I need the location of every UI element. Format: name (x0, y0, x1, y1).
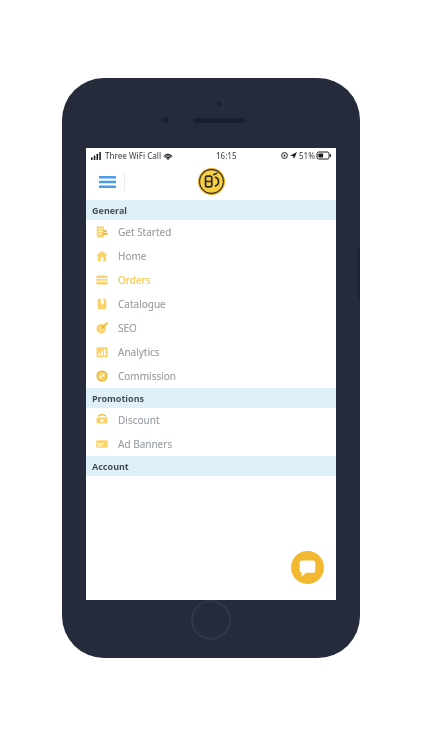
button[interactable]: App logo (198, 168, 225, 195)
staticText: 51% (299, 150, 315, 161)
staticText: Three WiFi Call (105, 150, 162, 161)
staticText: Catalogue (118, 297, 166, 311)
staticText: Ad Banners (118, 437, 173, 451)
staticText: Get Started (118, 225, 172, 239)
staticText: General (92, 204, 128, 216)
button[interactable]: Discount (86, 408, 336, 432)
staticText: Analytics (118, 345, 160, 359)
button[interactable]: Chat support (291, 551, 324, 584)
staticText: Promotions (92, 392, 145, 404)
button[interactable]: Orders (86, 268, 336, 292)
staticText: Account (92, 460, 129, 472)
staticText: SEO (118, 321, 137, 335)
button[interactable]: Open navigation menu (93, 168, 121, 196)
staticText: Discount (118, 413, 160, 427)
staticText: 16:15 (216, 150, 237, 161)
staticText: Orders (118, 273, 151, 287)
button[interactable]: Catalogue (86, 292, 336, 316)
staticText: Commission (118, 369, 177, 383)
button[interactable]: Get Started (86, 220, 336, 244)
button[interactable]: Analytics (86, 340, 336, 364)
staticText: Home (118, 249, 147, 263)
button[interactable]: Ad Banners (86, 432, 336, 456)
button[interactable]: Commission (86, 364, 336, 388)
button[interactable]: Home (86, 244, 336, 268)
button[interactable]: SEO (86, 316, 336, 340)
